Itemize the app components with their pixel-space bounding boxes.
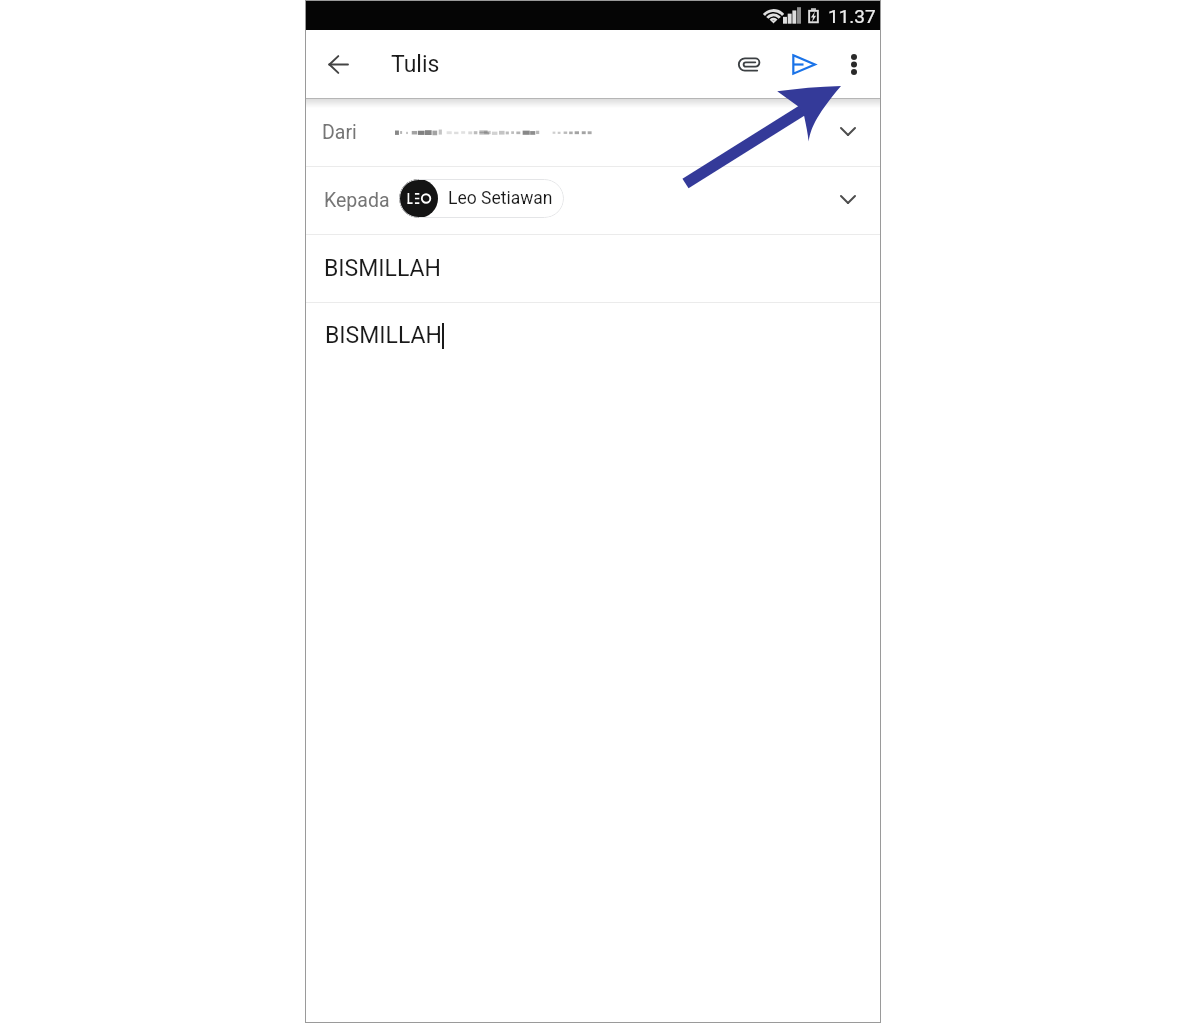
button[interactable]: Kepada bbox=[306, 167, 880, 234]
button[interactable]: BISMILLAH bbox=[306, 303, 880, 1022]
button[interactable]: Expand bbox=[828, 111, 868, 151]
staticText: Tulis bbox=[391, 51, 440, 78]
staticText: Leo Setiawan bbox=[448, 188, 553, 209]
button[interactable]: More options bbox=[833, 42, 875, 86]
button[interactable]: Back bbox=[316, 42, 361, 87]
staticText: Kepada bbox=[324, 189, 390, 212]
staticText: BISMILLAH bbox=[325, 322, 442, 349]
button[interactable]: Attach file bbox=[728, 42, 772, 86]
button[interactable]: Dari bbox=[306, 99, 880, 166]
staticText: BISMILLAH bbox=[324, 255, 441, 282]
button[interactable]: Send bbox=[782, 42, 826, 86]
button[interactable]: Leo Setiawan bbox=[399, 179, 564, 218]
button[interactable]: BISMILLAH bbox=[306, 235, 880, 302]
staticText: 11.37 bbox=[828, 5, 876, 27]
button[interactable]: Expand bbox=[828, 179, 868, 219]
staticText: Dari bbox=[322, 121, 357, 144]
